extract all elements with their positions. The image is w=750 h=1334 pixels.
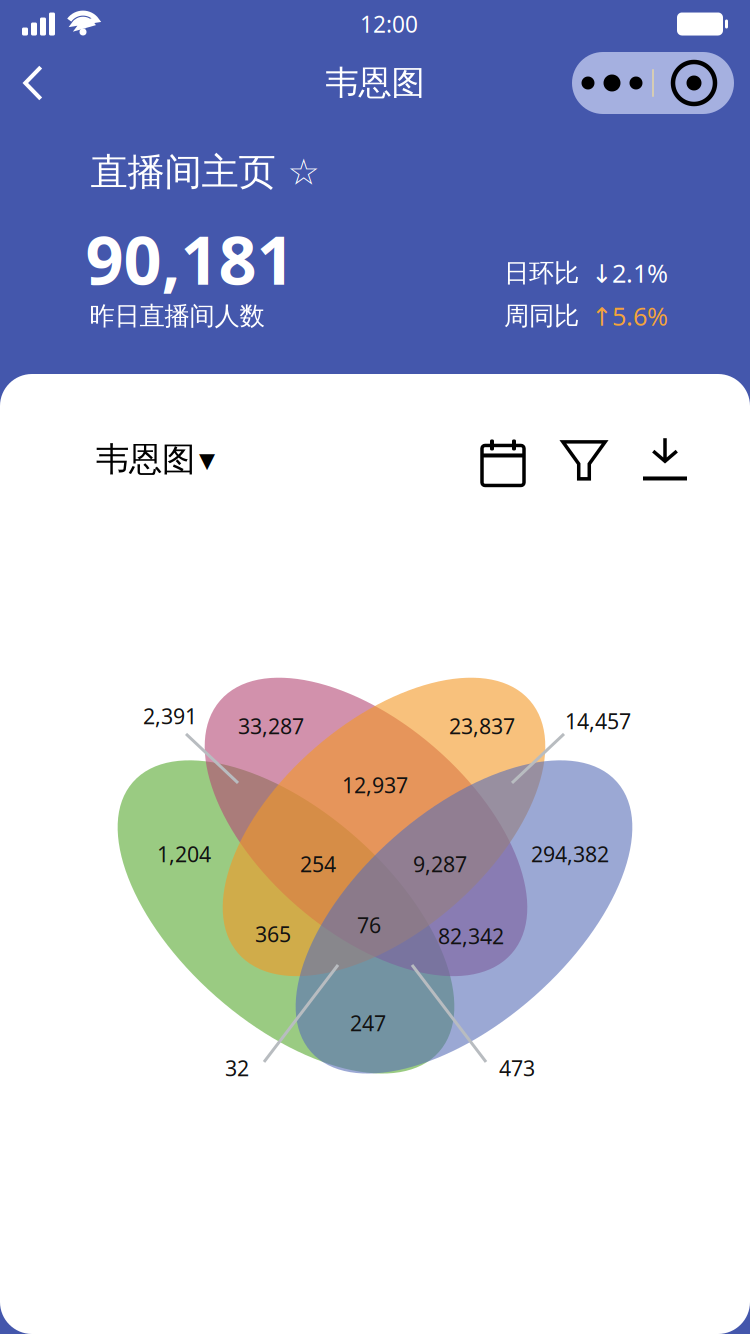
- staticText: 周同比: [504, 300, 579, 331]
- staticText: 14,457: [565, 707, 631, 735]
- button[interactable]: Back: [0, 45, 66, 121]
- staticText: 韦恩图: [96, 439, 195, 480]
- staticText: ↓2.1%: [591, 256, 668, 290]
- staticText: 254: [300, 850, 336, 878]
- staticText: ▾: [199, 441, 215, 478]
- staticText: 82,342: [438, 922, 504, 950]
- staticText: 90,181: [85, 215, 294, 303]
- staticText: 直播间主页: [90, 149, 275, 195]
- staticText: 473: [499, 1054, 535, 1082]
- staticText: ☆: [287, 152, 319, 192]
- staticText: 247: [350, 1009, 386, 1037]
- staticText: 日环比: [504, 257, 579, 288]
- staticText: 12:00: [360, 9, 418, 39]
- button[interactable]: Select date: [480, 435, 526, 483]
- staticText: 昨日直播间人数: [89, 300, 264, 331]
- staticText: 365: [255, 920, 291, 948]
- button[interactable]: 韦恩图: [96, 429, 215, 490]
- staticText: 9,287: [413, 850, 467, 878]
- staticText: 32: [225, 1054, 249, 1082]
- staticText: 1,204: [157, 840, 211, 868]
- staticText: 2,391: [143, 702, 197, 730]
- staticText: 12,937: [342, 771, 408, 799]
- button[interactable]: Download: [642, 436, 688, 482]
- staticText: 韦恩图: [325, 62, 424, 103]
- staticText: ↑5.6%: [591, 299, 668, 333]
- button[interactable]: Filter: [562, 437, 606, 481]
- staticText: 294,382: [531, 840, 609, 868]
- staticText: 33,287: [238, 712, 304, 740]
- button[interactable]: More options: [572, 52, 734, 114]
- staticText: 23,837: [449, 712, 515, 740]
- staticText: 76: [357, 911, 381, 939]
